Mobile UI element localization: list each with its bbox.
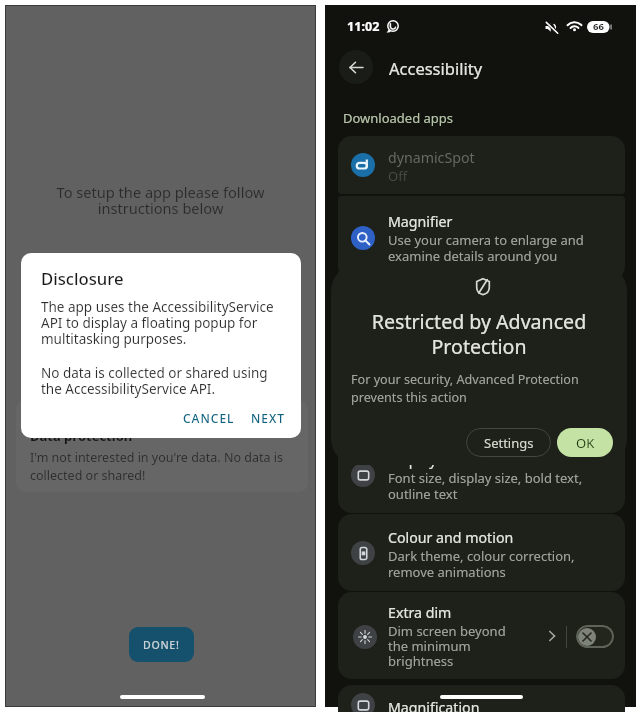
staticText: Restricted by Advanced Protection (331, 308, 627, 359)
staticText: Dim screen beyond the minimum brightness (388, 622, 506, 670)
button[interactable]: OK (557, 428, 613, 457)
staticText: Downloaded apps (343, 109, 454, 127)
staticText: Display size and text (388, 450, 524, 469)
staticText: Colour and motion (388, 528, 514, 547)
button[interactable]: Extra dim (338, 592, 625, 679)
staticText: Magnifier (388, 212, 453, 231)
staticText: Settings (484, 434, 534, 452)
staticText: Data protection (30, 427, 133, 445)
staticText: The app uses the AccessibilityService AP… (41, 298, 287, 348)
button[interactable]: CANCEL (177, 404, 241, 432)
staticText: Font size, display size, bold text, outl… (388, 469, 583, 502)
staticText: To setup the app please follow instructi… (5, 182, 316, 219)
staticText: DONE! (143, 638, 180, 652)
staticText: Use your camera to enlarge and examine d… (388, 231, 584, 264)
other: Open Extra dim (543, 627, 561, 645)
staticText: Disclosure (41, 267, 124, 290)
button[interactable]: Display size and text (338, 436, 625, 513)
button[interactable]: dynamicSpot (338, 136, 625, 194)
button[interactable]: Extra dim toggle (576, 625, 614, 648)
staticText: 66 (593, 20, 604, 33)
button[interactable]: Back (339, 50, 373, 84)
button[interactable]: Colour and motion (338, 514, 625, 591)
staticText: CANCEL (183, 410, 235, 426)
staticText: OK (576, 434, 595, 452)
staticText: Dark theme, colour correction, remove an… (388, 547, 575, 580)
button[interactable]: Magnification (338, 685, 625, 712)
button[interactable]: Settings (466, 428, 551, 457)
staticText: Accessibility (389, 57, 483, 79)
button[interactable]: Magnifier (338, 196, 625, 280)
button[interactable]: DONE! (129, 627, 194, 662)
staticText: Magnification (388, 698, 480, 712)
staticText: 11:02 (347, 18, 380, 35)
staticText: No data is collected or shared using the… (41, 364, 287, 398)
staticText: Extra dim (388, 603, 452, 622)
button[interactable]: NEXT (245, 404, 292, 432)
staticText: Off (388, 167, 408, 185)
staticText: dynamicSpot (388, 148, 475, 167)
button[interactable]: Data protection (16, 400, 308, 492)
staticText: For your security, Advanced Protection p… (351, 371, 579, 406)
staticText: NEXT (251, 410, 286, 426)
staticText: I'm not interested in you're data. No da… (30, 449, 283, 483)
